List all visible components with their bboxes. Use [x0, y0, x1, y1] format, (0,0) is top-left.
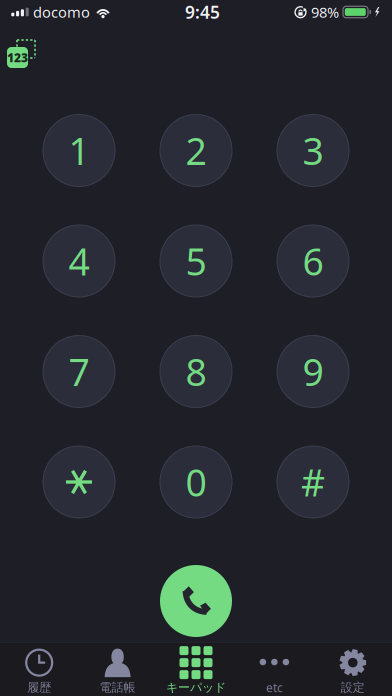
- button[interactable]: 履歴: [0, 641, 78, 696]
- staticText: #: [301, 457, 325, 507]
- staticText: 4: [68, 236, 89, 286]
- button[interactable]: キーパッド: [157, 641, 235, 696]
- staticText: 1: [68, 126, 89, 175]
- staticText: 3: [302, 126, 323, 175]
- button[interactable]: Call: [160, 565, 232, 637]
- staticText: 設定: [341, 680, 365, 695]
- button[interactable]: 4: [43, 225, 115, 297]
- staticText: 123: [7, 49, 28, 65]
- staticText: docomo: [33, 2, 90, 22]
- button[interactable]: 電話帳: [78, 641, 157, 696]
- staticText: 5: [185, 236, 206, 286]
- button[interactable]: 7: [43, 335, 115, 407]
- staticText: 7: [68, 347, 89, 396]
- staticText: 9: [302, 347, 323, 396]
- staticText: 98%: [311, 2, 339, 22]
- staticText: 8: [185, 347, 206, 396]
- button[interactable]: star: [43, 446, 115, 518]
- button[interactable]: 5: [160, 225, 232, 297]
- staticText: etc: [266, 679, 283, 695]
- staticText: 9:45: [185, 0, 220, 23]
- staticText: 電話帳: [100, 680, 136, 695]
- button[interactable]: 0: [160, 446, 232, 518]
- button[interactable]: 3: [277, 114, 349, 186]
- button[interactable]: 設定: [314, 641, 392, 696]
- button[interactable]: 2: [160, 114, 232, 186]
- button[interactable]: 9: [277, 335, 349, 407]
- button[interactable]: #: [277, 446, 349, 518]
- button[interactable]: 1: [43, 114, 115, 186]
- button[interactable]: etc: [235, 640, 314, 696]
- button[interactable]: 8: [160, 335, 232, 407]
- button[interactable]: 6: [277, 225, 349, 297]
- staticText: 6: [302, 236, 323, 286]
- staticText: 履歴: [27, 680, 51, 695]
- staticText: 2: [185, 126, 206, 175]
- staticText: 0: [185, 457, 206, 507]
- staticText: キーパッド: [166, 680, 226, 695]
- button[interactable]: Paste number: [7, 40, 39, 70]
